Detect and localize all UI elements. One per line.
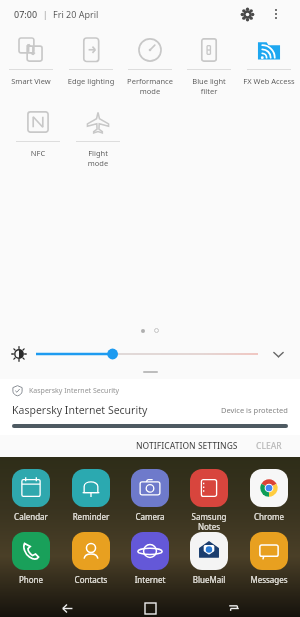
button[interactable]: Reminder bbox=[63, 469, 119, 522]
button[interactable]: Settings bbox=[236, 3, 258, 25]
button[interactable]: Expand brightness settings bbox=[268, 344, 288, 364]
button[interactable]: Brightness bbox=[36, 345, 258, 363]
button[interactable]: Edge lighting bbox=[63, 34, 119, 86]
staticText: Messages bbox=[241, 574, 297, 585]
staticText: Kaspersky Internet Security bbox=[29, 386, 120, 396]
button[interactable]: Camera bbox=[122, 469, 178, 522]
staticText: BlueMail bbox=[181, 574, 237, 585]
button[interactable]: More options bbox=[266, 4, 286, 24]
button[interactable]: Performance mode bbox=[122, 34, 178, 96]
button[interactable]: Back bbox=[50, 599, 84, 617]
staticText: 07:00 bbox=[14, 8, 38, 20]
button[interactable]: Chrome bbox=[241, 469, 297, 522]
button[interactable]: Home bbox=[133, 599, 167, 617]
button[interactable]: Calendar bbox=[3, 469, 59, 522]
button[interactable]: FX Web Access bbox=[241, 34, 297, 86]
button[interactable]: NOTIFICATION SETTINGS bbox=[130, 437, 244, 455]
staticText: NFC bbox=[10, 148, 66, 158]
staticText: Contacts bbox=[63, 574, 119, 585]
staticText: Calendar bbox=[3, 511, 59, 522]
staticText: Device is protected bbox=[221, 405, 288, 415]
button[interactable]: Samsung Notes bbox=[181, 469, 237, 532]
staticText: Flight mode bbox=[70, 148, 126, 168]
button[interactable]: Flight mode bbox=[68, 106, 128, 168]
staticText: Blue light filter bbox=[181, 76, 237, 96]
staticText: Camera bbox=[122, 511, 178, 522]
staticText: | bbox=[38, 8, 53, 20]
staticText: Phone bbox=[3, 574, 59, 585]
staticText: FX Web Access bbox=[241, 76, 297, 86]
button[interactable]: Contacts bbox=[63, 532, 119, 585]
button[interactable]: Smart View bbox=[3, 34, 59, 86]
staticText: CLEAR bbox=[256, 440, 282, 452]
button[interactable]: Recent apps bbox=[217, 599, 251, 617]
button[interactable]: Phone bbox=[3, 532, 59, 585]
staticText: Samsung Notes bbox=[181, 511, 237, 532]
staticText: Fri 20 April bbox=[53, 8, 99, 20]
button[interactable]: Internet bbox=[122, 532, 178, 585]
button[interactable]: Blue light filter bbox=[181, 34, 237, 96]
staticText: Kaspersky Internet Security bbox=[12, 403, 148, 417]
button[interactable]: BlueMail bbox=[181, 532, 237, 585]
button[interactable]: NFC bbox=[8, 106, 68, 158]
staticText: Chrome bbox=[241, 511, 297, 522]
staticText: Smart View bbox=[3, 76, 59, 86]
staticText: NOTIFICATION SETTINGS bbox=[136, 440, 238, 452]
button[interactable]: Messages bbox=[241, 532, 297, 585]
staticText: Performance mode bbox=[122, 76, 178, 96]
staticText: Internet bbox=[122, 574, 178, 585]
staticText: Edge lighting bbox=[63, 76, 119, 86]
button[interactable]: CLEAR bbox=[250, 437, 288, 455]
button[interactable]: Kaspersky Internet Security bbox=[0, 379, 300, 435]
staticText: Reminder bbox=[63, 511, 119, 522]
